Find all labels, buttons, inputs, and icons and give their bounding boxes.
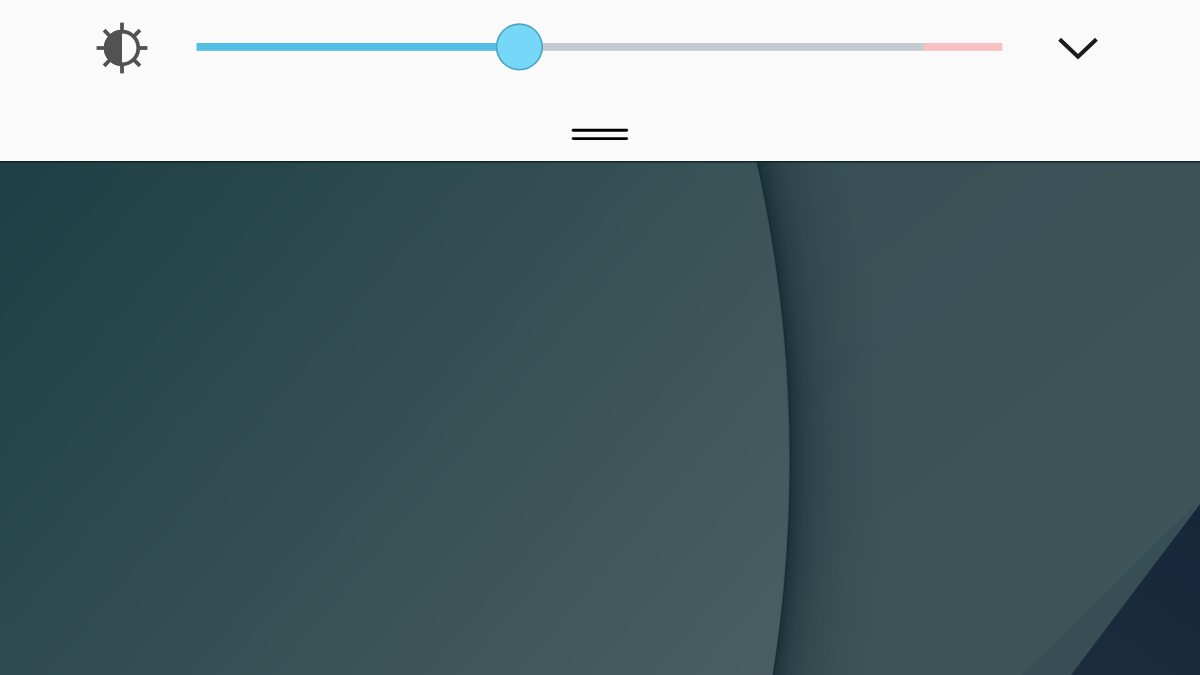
button[interactable]: Brightness level: [180, 17, 1020, 77]
button[interactable]: Brightness mode: [90, 16, 153, 79]
button[interactable]: Drag handle: [558, 114, 642, 154]
button[interactable]: Expand quick settings: [1046, 16, 1110, 80]
